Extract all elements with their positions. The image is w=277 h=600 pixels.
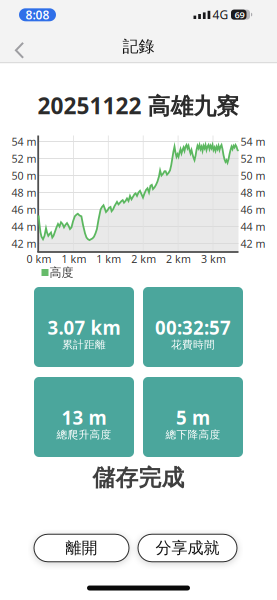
staticText: 總下降高度 [165,428,220,441]
staticText: 儲存完成 [92,464,184,492]
staticText: 1 km [61,252,86,266]
staticText: 3 km [201,252,226,266]
staticText: 42 m [11,236,36,251]
staticText: 4G [212,7,228,22]
staticText: 44 m [11,219,36,234]
button[interactable]: Back [4,32,34,68]
staticText: 46 m [240,202,265,217]
staticText: 總爬升高度 [56,428,111,441]
button[interactable]: 分享成就 [138,534,237,562]
staticText: 分享成就 [155,538,219,558]
staticText: 00:32:57 [155,315,231,340]
staticText: 8:08 [25,7,49,23]
staticText: 50 m [240,168,265,183]
staticText: 離開 [65,538,97,558]
staticText: 記錄 [122,37,154,56]
staticText: 69 [234,8,244,21]
staticText: 2 km [166,252,191,266]
staticText: 1 km [96,252,121,266]
staticText: 42 m [240,236,265,251]
staticText: 3.07 km [47,315,120,340]
staticText: 5 m [176,405,210,430]
staticText: 54 m [11,134,36,149]
staticText: 20251122 高雄九寮 [37,90,239,120]
staticText: 累計距離 [62,338,106,351]
staticText: 48 m [11,185,36,200]
staticText: 48 m [240,185,265,200]
staticText: 0 km [26,252,51,266]
staticText: 46 m [11,202,36,217]
staticText: 52 m [11,151,36,166]
staticText: 52 m [240,151,265,166]
staticText: 44 m [240,219,265,234]
staticText: 13 m [61,405,106,430]
staticText: 54 m [240,134,265,149]
staticText: 花費時間 [171,338,215,351]
staticText: 2 km [131,252,156,266]
staticText: 50 m [11,168,36,183]
staticText: 高度 [49,265,73,280]
button[interactable]: 離開 [34,534,129,562]
